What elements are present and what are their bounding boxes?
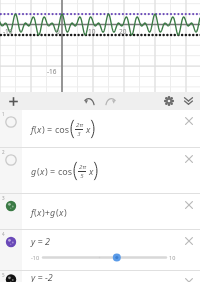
button[interactable]: Toggle plot 3 <box>0 194 22 229</box>
button[interactable]: Toggle plot 3 <box>0 194 200 229</box>
staticText: ) = <box>42 123 55 135</box>
staticText: ( <box>56 206 59 218</box>
button[interactable]: Toggle plot 5 <box>0 271 22 282</box>
staticText: ) <box>64 206 67 218</box>
staticText: cos <box>58 165 73 177</box>
button[interactable]: Undo <box>80 92 98 110</box>
staticText: 2π <box>76 121 83 129</box>
staticText: cos <box>55 123 70 135</box>
button[interactable]: Toggle plot 4 <box>0 230 200 270</box>
button[interactable]: Delete expression <box>178 230 200 270</box>
button[interactable]: Redo <box>102 92 120 110</box>
staticText: g <box>31 165 37 177</box>
staticText: 2 <box>2 149 5 155</box>
button[interactable]: Collapse <box>179 92 197 110</box>
staticText: 4 <box>2 231 5 237</box>
staticText: x <box>37 206 42 218</box>
staticText: )+ <box>42 206 50 218</box>
staticText: -10 <box>3 27 13 36</box>
staticText: x <box>86 123 91 135</box>
staticText: y = −2 <box>31 271 53 282</box>
button[interactable]: Delete expression <box>178 271 200 282</box>
button[interactable]: Toggle plot 2 <box>0 148 22 193</box>
staticText: x <box>89 165 94 177</box>
button[interactable]: Toggle plot 4 <box>0 230 22 270</box>
staticText: y = 2 <box>31 235 50 247</box>
button[interactable]: Delete expression <box>178 148 200 193</box>
staticText: f <box>31 123 34 135</box>
staticText: f <box>31 206 34 218</box>
staticText: x <box>37 123 42 135</box>
staticText: -16 <box>47 67 57 76</box>
staticText: 3 <box>77 130 81 138</box>
staticText: ( <box>37 165 40 177</box>
button[interactable]: Toggle plot 1 <box>0 110 22 147</box>
button[interactable]: Add expression <box>4 92 22 110</box>
staticText: 10 <box>169 254 176 261</box>
staticText: ( <box>34 123 37 135</box>
button[interactable]: Graph viewport <box>0 0 200 92</box>
button[interactable]: Delete expression <box>178 194 200 229</box>
staticText: 5 <box>2 272 5 278</box>
staticText: ( <box>34 206 37 218</box>
staticText: 10 <box>88 27 96 36</box>
staticText: x <box>40 165 45 177</box>
button[interactable]: Toggle plot 5 <box>0 271 200 282</box>
staticText: 20 <box>119 27 127 36</box>
staticText: x <box>59 206 64 218</box>
staticText: g <box>50 206 56 218</box>
staticText: -10 <box>31 254 40 261</box>
button[interactable]: Toggle plot 1 <box>0 110 200 147</box>
staticText: 0 <box>56 27 60 36</box>
button[interactable]: Slider for y = 2 <box>43 252 166 263</box>
staticText: 1 <box>2 111 5 117</box>
button[interactable]: Toggle plot 2 <box>0 148 200 193</box>
button[interactable]: Delete expression <box>178 110 200 147</box>
staticText: 5 <box>80 172 84 180</box>
staticText: 2π <box>79 163 86 171</box>
staticText: ) = <box>45 165 58 177</box>
staticText: 3 <box>2 195 5 201</box>
button[interactable]: Settings <box>160 92 178 110</box>
